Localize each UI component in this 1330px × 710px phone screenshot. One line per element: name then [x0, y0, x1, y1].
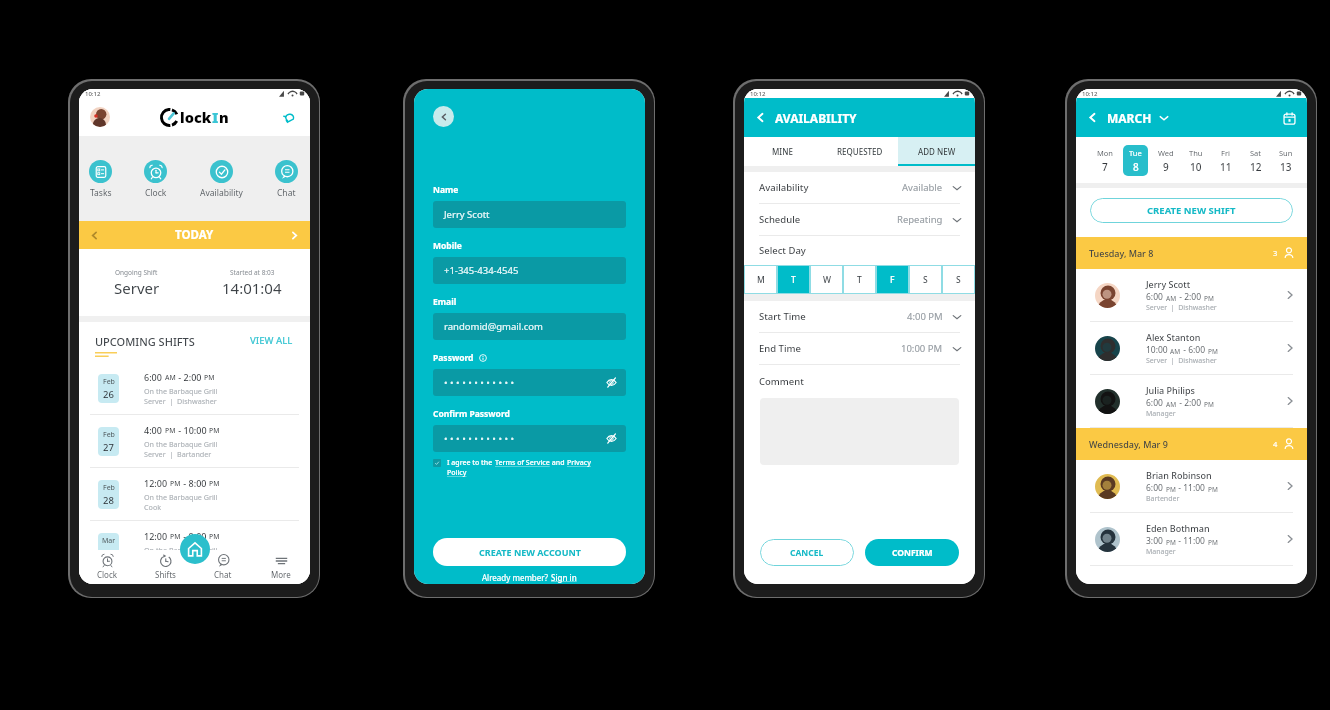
button[interactable]: Already member?: [414, 572, 645, 583]
staticText: 3:00: [1146, 535, 1166, 547]
staticText: On the Barbaque Grill: [144, 545, 218, 555]
staticText: PM: [1204, 294, 1214, 303]
staticText: 7: [1102, 160, 1108, 174]
staticText: 11: [1220, 160, 1232, 174]
button[interactable]: ADD NEW: [898, 137, 975, 166]
staticText: Sun: [1279, 148, 1293, 158]
button[interactable]: • • • • • • • • • • • •: [433, 369, 626, 396]
button[interactable]: W: [810, 265, 843, 294]
staticText: F: [890, 274, 895, 286]
button[interactable]: Back: [1085, 110, 1100, 125]
button[interactable]: Shifts: [136, 550, 194, 584]
button[interactable]: Sat: [1240, 137, 1270, 183]
button[interactable]: Mar: [79, 521, 310, 573]
button[interactable]: CREATE NEW SHIFT: [1090, 198, 1293, 223]
button[interactable]: REQUESTED: [821, 137, 898, 166]
button[interactable]: T: [843, 265, 876, 294]
button[interactable]: Alex Stanton: [1076, 322, 1307, 374]
staticText: PM: [170, 479, 181, 488]
button[interactable]: Brian Robinson: [1076, 460, 1307, 512]
button[interactable]: Feb: [79, 362, 310, 414]
button[interactable]: randomid@gmail.com: [433, 313, 626, 340]
button[interactable]: Calendar: [1281, 110, 1297, 126]
staticText: Feb: [103, 377, 115, 387]
button[interactable]: Fri: [1210, 137, 1240, 183]
button[interactable]: End Time: [744, 333, 975, 364]
staticText: 10: [1190, 160, 1202, 174]
button[interactable]: Tasks: [87, 160, 114, 199]
button[interactable]: +1-345-434-4545: [433, 257, 626, 284]
button[interactable]: Julia Philips: [1076, 375, 1307, 427]
staticText: 6:00: [144, 371, 165, 383]
button[interactable]: MINE: [744, 137, 821, 166]
staticText: randomid@gmail.com: [444, 320, 543, 333]
button[interactable]: Schedule: [744, 204, 975, 235]
button[interactable]: Home: [180, 534, 210, 564]
staticText: MINE: [772, 146, 793, 157]
button[interactable]: Jerry Scott: [433, 201, 626, 228]
button[interactable]: Sun: [1270, 137, 1300, 183]
button[interactable]: More: [252, 550, 310, 584]
button[interactable]: Availability: [744, 172, 975, 203]
staticText: CREATE NEW ACCOUNT: [479, 546, 581, 558]
button[interactable]: Clock: [142, 160, 169, 199]
staticText: S: [923, 274, 928, 286]
staticText: S: [956, 274, 961, 286]
button[interactable]: Jerry Scott: [1076, 269, 1307, 321]
button[interactable]: Start Time: [744, 301, 975, 332]
button[interactable]: MARCH: [1107, 110, 1169, 126]
button[interactable]: Mon: [1089, 137, 1120, 183]
staticText: Mon: [1097, 148, 1113, 158]
button[interactable]: T: [777, 265, 810, 294]
button[interactable]: • • • • • • • • • • • •: [433, 425, 626, 452]
staticText: Feb: [103, 430, 115, 440]
button[interactable]: CANCEL: [760, 539, 854, 566]
staticText: Server: [114, 278, 160, 298]
button[interactable]: VIEW ALL: [250, 334, 293, 347]
button[interactable]: Feb: [79, 468, 310, 520]
button[interactable]: Wed: [1150, 137, 1180, 183]
button[interactable]: Tue: [1120, 137, 1150, 183]
button[interactable]: I agree to the: [433, 458, 591, 478]
button[interactable]: Chat: [273, 160, 300, 199]
staticText: PM: [165, 426, 176, 435]
button[interactable]: S: [909, 265, 942, 294]
staticText: 8: [1133, 160, 1139, 174]
button[interactable]: Eden Bothman: [1076, 513, 1307, 565]
button[interactable]: CONFIRM: [865, 539, 959, 566]
staticText: More: [271, 569, 291, 580]
button[interactable]: Back: [753, 110, 768, 125]
staticText: Clock: [145, 187, 167, 199]
button[interactable]: S: [942, 265, 975, 294]
staticText: 4:00 PM: [907, 310, 943, 323]
staticText: 13: [1280, 160, 1292, 174]
staticText: 9: [1163, 160, 1169, 174]
staticText: Tuesday, Mar 8: [1089, 247, 1154, 259]
button[interactable]: Feb: [79, 415, 310, 467]
button[interactable]: Chat: [194, 550, 252, 584]
button[interactable]: CREATE NEW ACCOUNT: [433, 538, 626, 566]
staticText: - 2:00: [1177, 397, 1204, 409]
staticText: Already member?: [482, 572, 551, 583]
staticText: Privacy: [567, 458, 591, 468]
button[interactable]: Previous day: [88, 229, 101, 242]
staticText: ADD NEW: [918, 146, 956, 157]
staticText: Mobile: [433, 240, 462, 252]
button[interactable]: Profile: [90, 107, 110, 127]
staticText: Availability: [200, 187, 243, 199]
staticText: VIEW ALL: [250, 334, 293, 347]
staticText: Chat: [214, 569, 232, 580]
staticText: Policy: [447, 468, 467, 478]
button[interactable]: Back: [433, 106, 454, 127]
staticText: Mar: [102, 536, 116, 546]
button[interactable]: M: [744, 265, 777, 294]
button[interactable]: Clock: [79, 550, 136, 584]
button[interactable]: Thu: [1180, 137, 1210, 183]
staticText: PM: [1208, 538, 1218, 547]
button[interactable]: Next day: [288, 229, 301, 242]
button[interactable]: F: [876, 265, 909, 294]
staticText: AM: [1170, 347, 1181, 356]
button[interactable]: Availability: [198, 160, 245, 199]
button[interactable]: Notifications: [279, 107, 299, 127]
